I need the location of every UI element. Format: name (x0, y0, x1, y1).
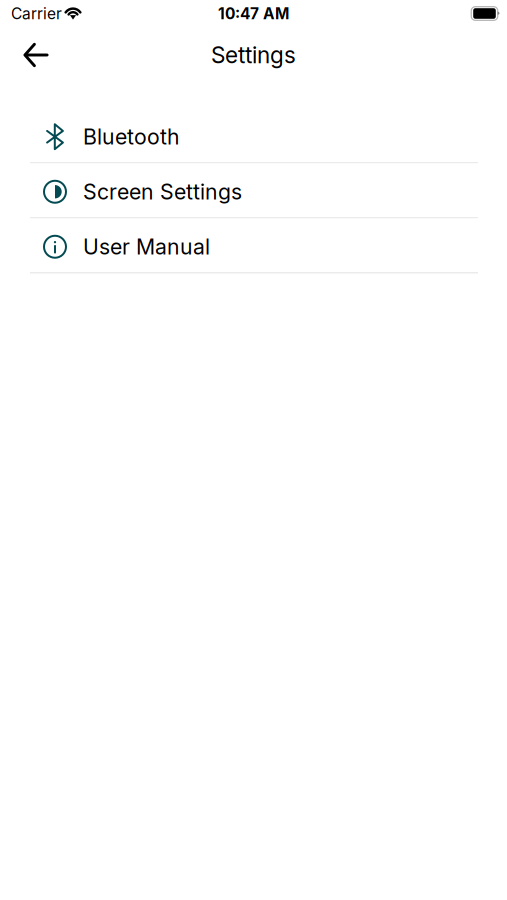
staticText: 10:47 AM (218, 4, 289, 23)
staticText: Settings (211, 41, 296, 69)
staticText: User Manual (83, 234, 210, 260)
staticText: Screen Settings (83, 179, 242, 205)
button[interactable]: Back (0, 33, 62, 77)
staticText: Bluetooth (83, 124, 180, 150)
button[interactable]: User Manual (0, 218, 507, 273)
button[interactable]: Screen Settings (0, 163, 507, 218)
staticText: Carrier (11, 4, 62, 23)
button[interactable]: Bluetooth (0, 108, 507, 163)
